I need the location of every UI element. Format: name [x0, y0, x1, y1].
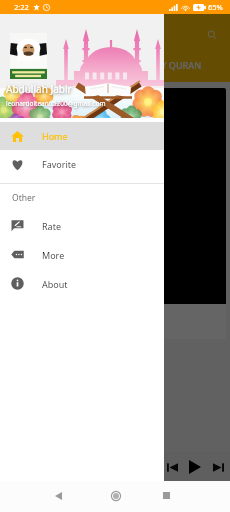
button[interactable]: Previous: [162, 457, 182, 477]
staticText: 65%: [208, 2, 223, 12]
button[interactable]: Home: [106, 486, 125, 505]
button[interactable]: Home: [0, 122, 164, 150]
staticText: About: [42, 278, 68, 290]
staticText: leonardolteanu5200@gmail.com: [6, 99, 106, 108]
button[interactable]: Next: [208, 457, 228, 477]
button[interactable]: Play: [184, 456, 206, 478]
button[interactable]: Favorite: [0, 150, 164, 178]
staticText: More: [42, 249, 65, 261]
staticText: Rate: [42, 220, 61, 232]
staticText: Home: [42, 130, 68, 142]
button[interactable]: Rate: [0, 211, 164, 240]
button[interactable]: About: [0, 269, 164, 298]
button[interactable]: More: [0, 240, 164, 269]
staticText: Other: [12, 192, 36, 204]
staticText: Favorite: [42, 158, 77, 170]
staticText: MY QURAN: [153, 59, 202, 71]
button[interactable]: Recents: [157, 486, 176, 505]
staticText: 2:22: [14, 2, 29, 12]
staticText: Abdullah Jabir: [6, 82, 72, 96]
button[interactable]: Search: [200, 23, 224, 47]
button[interactable]: [4, 88, 226, 339]
button[interactable]: Back: [49, 486, 68, 505]
